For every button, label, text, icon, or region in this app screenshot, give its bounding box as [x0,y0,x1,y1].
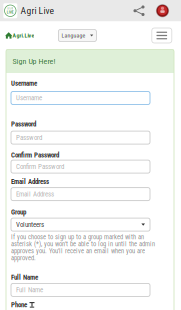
button[interactable]: Username [11,91,150,104]
staticText: AGRI [7,7,13,10]
button[interactable]: Full Name [11,283,150,296]
button[interactable]: Menu [152,28,172,43]
staticText: Full Name [11,273,38,281]
staticText: LIVE [7,10,14,14]
staticText: Password [16,133,42,142]
staticText: Sign Up Here! [12,57,55,66]
staticText: Agri Live [20,5,54,16]
staticText: Username [16,94,42,102]
button[interactable]: Confirm Password [11,160,150,173]
button[interactable]: Volunteers [11,218,150,231]
staticText: Email Address [11,177,49,186]
staticText: Email Address [16,190,54,198]
staticText: Group [11,208,26,216]
staticText: Confirm Password [11,151,59,159]
staticText: Full Name [16,286,43,294]
button[interactable]: Stop [153,0,171,21]
staticText: If you choose to sign up to a group mark… [11,233,155,262]
staticText: Agri.Live [12,32,34,39]
button[interactable]: Share [124,0,153,21]
button[interactable]: Email Address [11,188,150,201]
staticText: Volunteers [16,220,44,229]
staticText: Password [11,120,36,128]
staticText: Username [11,79,37,87]
button[interactable]: Language [58,29,96,41]
staticText: Confirm Password [16,162,64,171]
button[interactable]: Agri.Live [5,23,37,47]
staticText: Language [61,32,85,39]
staticText: Phone [11,301,27,309]
button[interactable]: Password [11,131,150,144]
